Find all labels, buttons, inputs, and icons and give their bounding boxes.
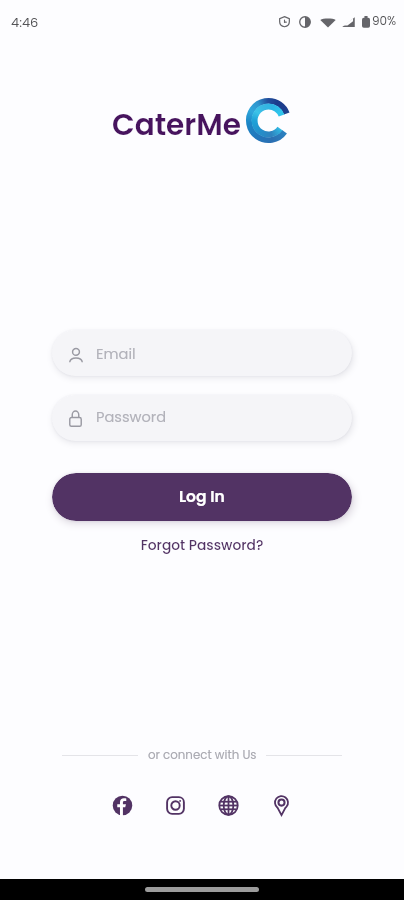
staticText: 4:46 [11, 13, 39, 31]
button[interactable]: Instagram [165, 795, 186, 816]
staticText: 90% [372, 12, 397, 29]
button[interactable]: Forgot Password? [0, 536, 404, 555]
staticText: or connect with Us [148, 747, 257, 764]
button[interactable]: Log In [52, 473, 352, 521]
staticText: Log In [179, 486, 225, 508]
button[interactable]: Facebook [112, 795, 133, 816]
button[interactable]: Email [52, 330, 352, 376]
staticText: Password [96, 407, 167, 427]
button[interactable]: Password [52, 395, 352, 441]
button[interactable]: Website [218, 795, 239, 816]
staticText: CaterMe [112, 104, 241, 145]
staticText: Email [96, 344, 136, 364]
button[interactable]: Location [271, 795, 292, 816]
